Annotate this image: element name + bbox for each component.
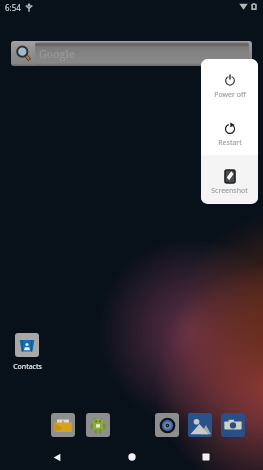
button[interactable]: Restart: [201, 107, 258, 155]
staticText: Contacts: [13, 362, 42, 372]
button[interactable]: Screenshot: [201, 155, 258, 203]
button[interactable]: Recents: [192, 444, 220, 470]
staticText: Power off: [214, 90, 246, 100]
button[interactable]: Email: [51, 413, 75, 437]
staticText: Google: [39, 46, 75, 61]
staticText: 6:54: [5, 2, 21, 13]
staticText: Screenshot: [211, 186, 248, 196]
button[interactable]: Power off: [201, 59, 258, 107]
button[interactable]: Camera: [221, 413, 245, 437]
button[interactable]: Camera lens: [155, 413, 179, 437]
button[interactable]: Contacts: [5, 333, 49, 372]
staticText: Restart: [218, 138, 242, 148]
button[interactable]: Play Store: [86, 413, 110, 437]
button[interactable]: Google: [11, 41, 252, 66]
button[interactable]: Home: [118, 444, 146, 470]
button[interactable]: Gallery: [188, 413, 212, 437]
button[interactable]: Back: [43, 444, 71, 470]
